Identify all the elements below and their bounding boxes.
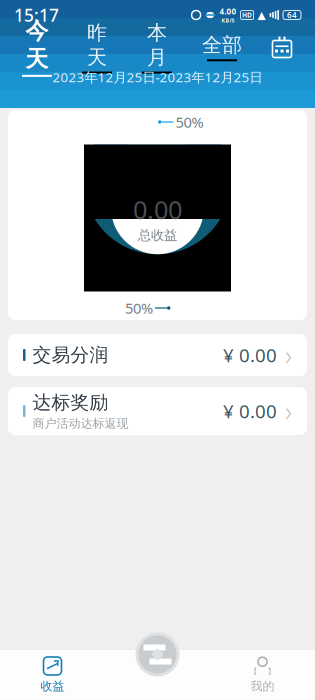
button[interactable]: 首页	[135, 632, 179, 676]
staticText: ▲	[258, 9, 266, 21]
button[interactable]: 收益	[0, 650, 105, 700]
staticText: ¥ 0.00	[223, 399, 277, 423]
staticText: ¥ 0.00	[223, 343, 277, 367]
staticText: 全部	[202, 33, 242, 57]
staticText: 15:17	[14, 3, 59, 26]
button[interactable]: 我的	[210, 650, 315, 700]
staticText: 0.00	[133, 192, 182, 226]
staticText: 50%	[125, 298, 153, 318]
button[interactable]: 达标奖励	[8, 387, 307, 435]
staticText: ›	[285, 393, 292, 429]
button[interactable]: 昨天	[78, 20, 116, 73]
staticText: 收益	[40, 679, 64, 694]
button[interactable]: 今天	[18, 17, 56, 77]
staticText: 4.00	[220, 6, 237, 17]
staticText: 我的	[250, 679, 274, 694]
staticText: KB/S	[222, 17, 235, 24]
button[interactable]: 选择日期	[267, 31, 297, 62]
staticText: 交易分润	[32, 343, 108, 366]
staticText: 64	[287, 10, 297, 20]
staticText: 今天	[25, 17, 48, 73]
button[interactable]: 本月	[138, 20, 176, 73]
staticText: 商户活动达标返现	[32, 416, 128, 431]
staticText: 总收益	[138, 227, 177, 243]
staticText: 50%	[175, 112, 203, 132]
staticText: 2023年12月25日-2023年12月25日	[52, 68, 262, 86]
staticText: 昨天	[87, 20, 107, 69]
button[interactable]: 全部	[198, 33, 246, 61]
staticText: 本月	[147, 20, 167, 69]
staticText: HD	[242, 11, 252, 19]
staticText: ›	[285, 337, 292, 373]
button[interactable]: 交易分润	[8, 334, 307, 376]
staticText: 达标奖励	[32, 391, 108, 414]
